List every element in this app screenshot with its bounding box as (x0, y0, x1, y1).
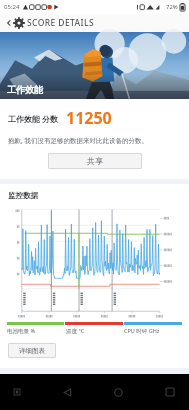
other: Back (4, 18, 14, 28)
button[interactable]: 共享 (48, 153, 142, 169)
button[interactable]: 详细图表 (8, 343, 56, 358)
button[interactable]: Back (58, 383, 76, 401)
button[interactable]: Back (0, 14, 189, 32)
staticText: 05:24 (4, 3, 20, 11)
staticText: 电池电量 % (7, 327, 36, 335)
staticText: 11250 (66, 107, 112, 129)
staticText: 共享 (87, 156, 103, 166)
button[interactable]: Recent apps (161, 383, 179, 401)
staticText: 详细图表 (19, 347, 45, 355)
staticText: CPU 时钟 GHz (124, 327, 160, 335)
staticText: 抱歉, 我们没有足够的数据来对比此设备的分数。 (8, 136, 148, 145)
staticText: 72% (166, 3, 178, 11)
staticText: 温度 °C (66, 327, 85, 335)
button[interactable]: Home (109, 383, 127, 401)
button[interactable]: Keyboard (10, 385, 24, 399)
staticText: 工作效能 (7, 84, 43, 95)
staticText: 工作效能 分数 (8, 113, 59, 124)
staticText: SCORE DETAILS (27, 17, 95, 29)
staticText: 监控数据 (8, 191, 38, 200)
